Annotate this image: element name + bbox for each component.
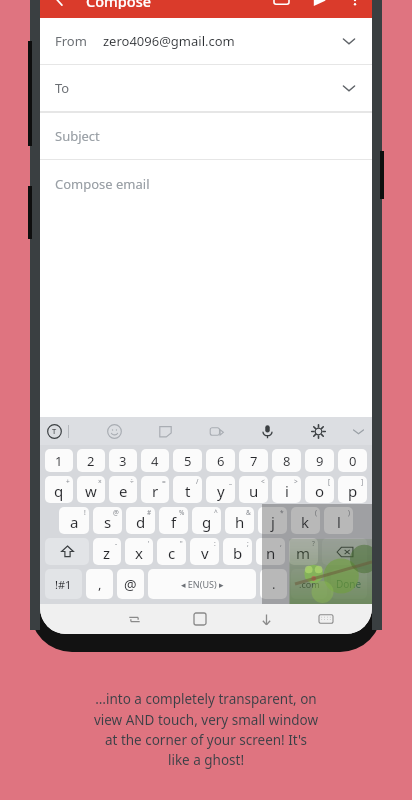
staticText: ◂ EN(US) ▸ (181, 578, 224, 590)
staticText: f (171, 512, 177, 532)
button[interactable]: .com (291, 569, 327, 599)
staticText: …into a completely transparent, on view … (0, 690, 412, 769)
button[interactable]: ) (324, 507, 353, 534)
staticText: > (294, 477, 298, 486)
button[interactable]: 9 (305, 449, 334, 472)
button[interactable]: ! (59, 507, 89, 534)
button[interactable]: Voice input (242, 417, 293, 445)
button[interactable]: 8 (272, 449, 301, 472)
button[interactable]: Done (331, 569, 367, 599)
button[interactable]: @ (117, 569, 144, 599)
staticText: ; (247, 539, 249, 548)
button[interactable]: " (157, 538, 186, 565)
staticText: , (98, 575, 102, 593)
button[interactable]: + (45, 476, 73, 503)
staticText: 1 (55, 452, 63, 470)
staticText: l (337, 512, 341, 532)
staticText: d (136, 512, 146, 532)
staticText: zero4096@gmail.com (103, 32, 235, 50)
button[interactable]: < (239, 476, 268, 503)
staticText: 0 (349, 452, 357, 470)
button[interactable]: 0 (338, 449, 367, 472)
staticText: / (196, 477, 199, 486)
staticText: .com (299, 578, 320, 590)
button[interactable]: Send (300, 0, 338, 9)
staticText: To (55, 79, 70, 97)
button[interactable]: ; (223, 538, 252, 565)
button[interactable]: ( (291, 507, 320, 534)
button[interactable]: Collapse (344, 417, 372, 445)
button[interactable]: Attach (262, 0, 300, 9)
button[interactable]: GIF (191, 417, 242, 445)
button[interactable]: % (159, 507, 188, 534)
button[interactable]: Back (40, 0, 80, 9)
button[interactable]: From (40, 18, 372, 64)
button[interactable]: Backspace (322, 538, 367, 565)
button[interactable]: × (77, 476, 105, 503)
staticText: p (348, 481, 358, 501)
button[interactable]: Home (167, 604, 233, 634)
staticText: n (266, 543, 276, 563)
button[interactable]: Emoji (89, 417, 140, 445)
button[interactable]: Transparent floating window (262, 504, 372, 604)
button[interactable]: _ (206, 476, 235, 503)
staticText: ] (361, 477, 364, 486)
button[interactable]: * (258, 507, 287, 534)
button[interactable]: ^ (192, 507, 221, 534)
button[interactable]: More options (338, 0, 372, 9)
button[interactable]: # (126, 507, 155, 534)
button[interactable]: Shift (45, 538, 89, 565)
button[interactable]: ◂ EN(US) ▸ (148, 569, 256, 599)
button[interactable]: 3 (109, 449, 137, 472)
staticText: z (103, 543, 111, 563)
staticText: u (249, 481, 259, 501)
button[interactable]: Recents (101, 604, 167, 634)
button[interactable]: [ (305, 476, 334, 503)
button[interactable]: 2 (77, 449, 105, 472)
button[interactable]: Sticker (140, 417, 191, 445)
staticText: 7 (250, 452, 258, 470)
staticText: m (296, 543, 311, 563)
button[interactable]: ? (289, 538, 318, 565)
button[interactable]: / (173, 476, 202, 503)
button[interactable]: > (272, 476, 301, 503)
staticText: & (246, 508, 251, 517)
button[interactable]: Subject (40, 113, 372, 159)
button[interactable]: 1 (45, 449, 73, 472)
staticText: !#1 (55, 577, 72, 592)
button[interactable]: @ (93, 507, 122, 534)
button[interactable]: = (141, 476, 169, 503)
staticText: o (315, 481, 325, 501)
button[interactable]: ÷ (109, 476, 137, 503)
button[interactable]: Keyboard (299, 604, 352, 634)
button[interactable]: To (40, 65, 372, 111)
staticText: # (147, 508, 152, 517)
button[interactable]: 7 (239, 449, 268, 472)
button[interactable]: Compose email (40, 160, 372, 417)
button[interactable]: Hide keyboard (233, 604, 299, 634)
staticText: = (162, 477, 166, 486)
staticText: w (85, 481, 97, 501)
staticText: ( (315, 508, 317, 517)
button[interactable]: ' (125, 538, 153, 565)
button[interactable]: Settings (293, 417, 344, 445)
staticText: 3 (119, 452, 127, 470)
button[interactable]: : (190, 538, 219, 565)
staticText: Compose (86, 0, 152, 9)
button[interactable]: , (256, 538, 285, 565)
staticText: x (135, 543, 143, 563)
button[interactable]: !#1 (45, 569, 82, 599)
staticText: h (235, 512, 245, 532)
staticText: % (179, 508, 185, 517)
staticText: T (52, 426, 57, 436)
staticText: k (301, 512, 310, 532)
button[interactable]: 5 (173, 449, 202, 472)
button[interactable]: & (225, 507, 254, 534)
button[interactable]: ] (338, 476, 367, 503)
button[interactable]: , (86, 569, 113, 599)
button[interactable]: Translate (40, 417, 68, 445)
button[interactable]: 4 (141, 449, 169, 472)
button[interactable]: - (93, 538, 121, 565)
button[interactable]: . (260, 569, 287, 599)
button[interactable]: 6 (206, 449, 235, 472)
